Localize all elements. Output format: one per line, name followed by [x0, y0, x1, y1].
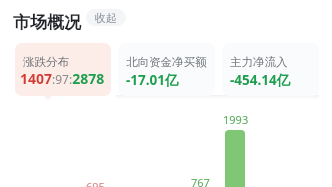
button[interactable]: 北向资金净买额	[118, 43, 215, 96]
staticText: -17.01亿	[126, 71, 179, 89]
staticText: 收起	[95, 11, 117, 25]
button[interactable]: 涨跌分布	[15, 43, 111, 96]
staticText: 涨跌分布	[23, 55, 69, 69]
staticText: 北向资金净买额	[126, 55, 207, 69]
staticText: 市场概况	[13, 12, 81, 33]
staticText: 1993	[223, 112, 249, 127]
button[interactable]: 收起	[86, 9, 126, 26]
staticText: -454.14亿	[230, 71, 291, 89]
other: 涨跌分布指示	[43, 95, 53, 100]
button[interactable]: 主力净流入	[222, 43, 319, 96]
other: 上涨 1993 家	[225, 130, 245, 187]
staticText: 1407:97:2878	[20, 69, 105, 88]
staticText: 695	[86, 179, 105, 187]
staticText: 767	[191, 175, 210, 187]
staticText: 主力净流入	[230, 55, 288, 69]
